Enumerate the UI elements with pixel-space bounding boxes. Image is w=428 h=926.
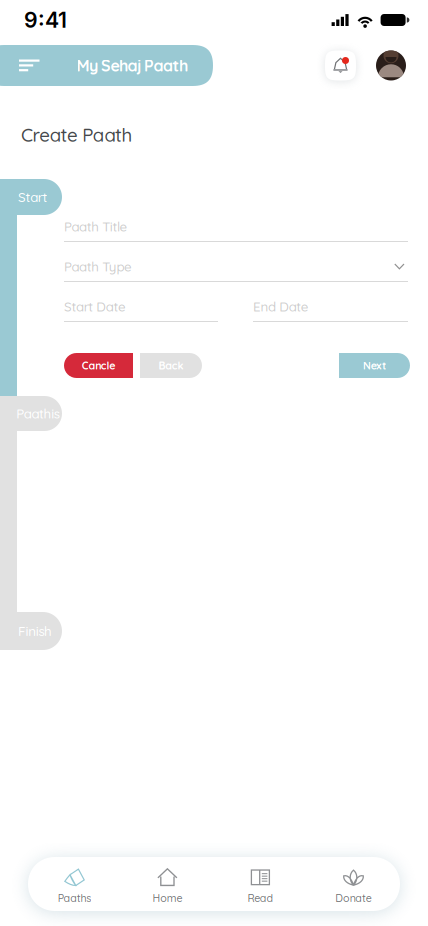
staticText: Back bbox=[158, 359, 183, 372]
button[interactable]: Donate bbox=[307, 857, 400, 911]
button[interactable]: Home bbox=[121, 857, 214, 911]
staticText: Paaths bbox=[58, 891, 91, 905]
staticText: End Date bbox=[253, 298, 309, 315]
button[interactable]: My Sehaj Paath bbox=[0, 45, 213, 86]
button[interactable]: Notifications bbox=[325, 50, 356, 80]
button[interactable]: Back bbox=[140, 353, 202, 378]
staticText: Start bbox=[18, 189, 47, 205]
button[interactable]: Cancle bbox=[64, 353, 133, 378]
staticText: My Sehaj Paath bbox=[76, 55, 188, 75]
button[interactable]: Next bbox=[339, 353, 410, 378]
staticText: 9:41 bbox=[24, 7, 67, 33]
staticText: Paath Title bbox=[64, 218, 127, 235]
staticText: Cancle bbox=[82, 359, 115, 372]
button[interactable]: Read bbox=[214, 857, 307, 911]
staticText: Home bbox=[152, 891, 182, 905]
staticText: Paath Type bbox=[64, 258, 132, 275]
staticText: Read bbox=[247, 891, 273, 905]
button[interactable]: Paaths bbox=[28, 857, 121, 911]
staticText: Next bbox=[363, 359, 386, 372]
staticText: Paathis bbox=[16, 405, 60, 422]
staticText: Start Date bbox=[64, 298, 126, 315]
staticText: Donate bbox=[335, 891, 372, 905]
staticText: Create Paath bbox=[21, 123, 133, 146]
staticText: Finish bbox=[18, 623, 52, 639]
button[interactable]: Profile bbox=[376, 50, 406, 80]
